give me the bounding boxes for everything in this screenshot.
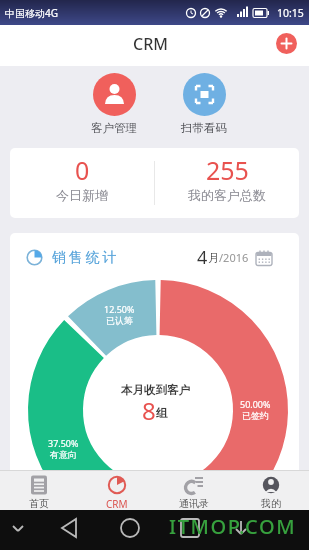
staticText: 销售统计	[52, 249, 120, 267]
button[interactable]: 0	[10, 153, 154, 203]
staticText: ITMOP.COM	[169, 513, 297, 540]
staticText: 已认筹	[106, 315, 133, 326]
staticText: 255	[206, 153, 249, 187]
button[interactable]: 255	[155, 153, 299, 203]
staticText: 月	[208, 251, 219, 265]
staticText: 37.50%	[48, 437, 79, 449]
staticText: 本月收到客户	[121, 383, 190, 397]
staticText: CRM	[106, 497, 128, 510]
staticText: 50.00%	[240, 398, 271, 410]
staticText: 中国移动4G	[5, 6, 58, 20]
staticText: CRM	[133, 33, 168, 55]
staticText: 12.50%	[104, 303, 135, 315]
staticText: 0	[75, 153, 90, 187]
button[interactable]: 扫带看码	[159, 73, 249, 135]
button[interactable]: 首页	[0, 471, 78, 510]
staticText: 通讯录	[179, 497, 209, 510]
staticText: 已签约	[242, 410, 269, 421]
staticText: 我的客户总数	[188, 187, 266, 203]
button[interactable]: 我的	[232, 471, 309, 510]
staticText: 8	[142, 394, 156, 427]
staticText: 扫带看码	[181, 121, 227, 135]
staticText: 今日新增	[56, 187, 108, 203]
staticText: 有意向	[50, 449, 77, 460]
button[interactable]	[276, 33, 297, 54]
staticText: 4	[197, 245, 208, 270]
staticText: 我的	[261, 497, 281, 510]
button[interactable]: 客户管理	[69, 73, 159, 135]
button[interactable]: 4	[197, 245, 273, 270]
staticText: 组	[156, 406, 168, 420]
button[interactable]: CRM	[78, 471, 155, 510]
button[interactable]: 通讯录	[155, 471, 232, 510]
staticText: /2016	[219, 250, 249, 265]
staticText: 10:15	[277, 6, 304, 20]
staticText: 客户管理	[91, 121, 137, 135]
staticText: 首页	[29, 497, 49, 510]
